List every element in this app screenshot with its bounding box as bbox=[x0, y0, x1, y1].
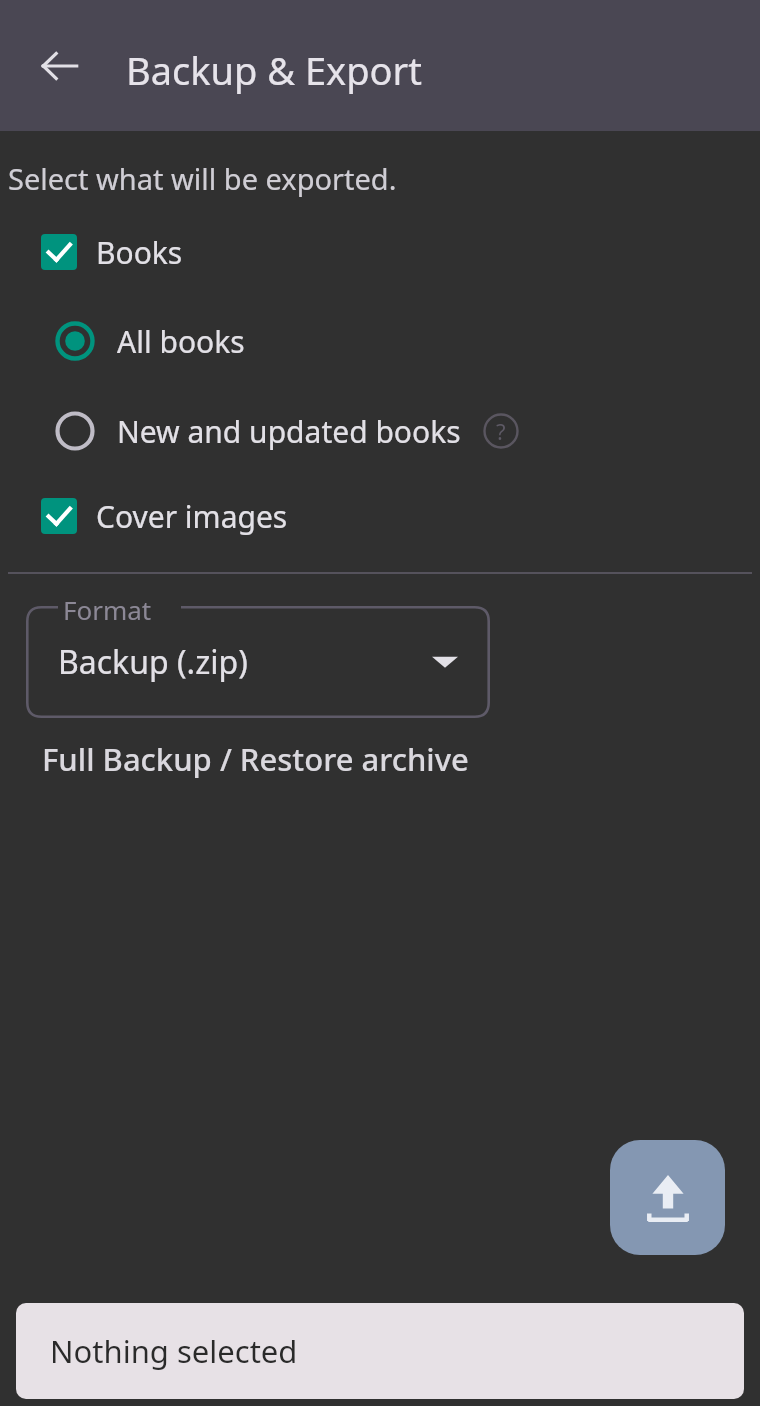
staticText: New and updated books bbox=[117, 411, 461, 452]
staticText: Cover images bbox=[96, 496, 288, 537]
button[interactable]: Export bbox=[610, 1140, 725, 1255]
staticText: Select what will be exported. bbox=[8, 159, 397, 198]
button[interactable]: Books bbox=[41, 224, 183, 280]
staticText: Full Backup / Restore archive bbox=[42, 738, 469, 780]
staticText: Backup (.zip) bbox=[58, 640, 248, 684]
button[interactable]: New and updated books bbox=[55, 398, 461, 464]
button[interactable]: Back bbox=[30, 36, 90, 96]
staticText: Format bbox=[63, 592, 152, 627]
staticText: All books bbox=[117, 321, 245, 362]
button[interactable]: All books bbox=[55, 308, 245, 374]
staticText: ? bbox=[496, 416, 506, 446]
button[interactable]: Nothing selected bbox=[16, 1303, 744, 1399]
button[interactable]: Help bbox=[475, 405, 527, 457]
staticText: Backup & Export bbox=[126, 44, 422, 96]
button[interactable]: Cover images bbox=[41, 488, 288, 544]
button[interactable]: Backup (.zip) bbox=[26, 606, 490, 718]
staticText: Books bbox=[96, 232, 183, 273]
staticText: Nothing selected bbox=[50, 1330, 298, 1372]
